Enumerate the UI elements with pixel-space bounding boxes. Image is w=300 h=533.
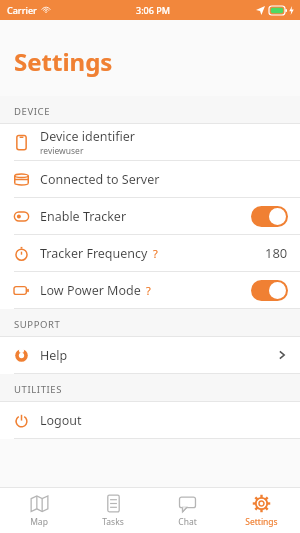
staticText: Device identifier xyxy=(40,128,135,145)
button[interactable]: Device identifier xyxy=(0,124,300,160)
staticText: Carrier xyxy=(7,4,37,16)
button[interactable]: Chat xyxy=(152,488,222,533)
button[interactable]: Tasks xyxy=(78,488,148,533)
staticText: DEVICE xyxy=(14,105,51,118)
staticText: UTILITIES xyxy=(14,383,63,396)
staticText: Settings xyxy=(14,45,113,78)
staticText: 180 xyxy=(265,244,288,262)
staticText: ? xyxy=(146,283,151,298)
button[interactable]: Toggle xyxy=(251,280,288,301)
button[interactable]: Logout xyxy=(0,402,300,438)
staticText: Tracker Frequency xyxy=(40,245,148,262)
button[interactable]: Map xyxy=(4,488,74,533)
staticText: Low Power Mode xyxy=(40,282,141,299)
button[interactable]: Settings xyxy=(226,488,296,533)
button[interactable]: Toggle xyxy=(251,206,288,227)
staticText: SUPPORT xyxy=(14,318,61,331)
staticText: 3:06 PM xyxy=(136,4,170,16)
button[interactable]: Enable Tracker xyxy=(0,198,300,234)
staticText: Map xyxy=(30,516,48,528)
other: Open xyxy=(276,349,288,361)
staticText: Enable Tracker xyxy=(40,208,127,225)
staticText: ? xyxy=(153,246,158,261)
staticText: Tasks xyxy=(102,516,124,528)
staticText: reviewuser xyxy=(40,145,84,157)
button[interactable]: Connected to Server xyxy=(0,161,300,197)
staticText: Help xyxy=(40,347,68,364)
staticText: Logout xyxy=(40,412,82,429)
button[interactable]: Low Power Mode xyxy=(0,272,300,308)
button[interactable]: Tracker Frequency xyxy=(0,235,300,271)
button[interactable]: Help xyxy=(0,337,300,373)
staticText: Settings xyxy=(245,516,278,528)
staticText: Connected to Server xyxy=(40,171,160,188)
staticText: Chat xyxy=(178,516,197,528)
